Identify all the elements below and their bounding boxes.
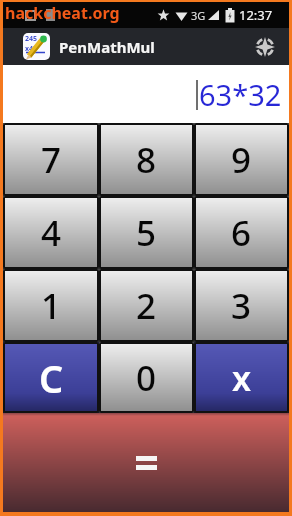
button[interactable]: 6 <box>194 196 289 269</box>
staticText: PenMathMul <box>59 37 155 57</box>
button[interactable]: 9 <box>194 123 289 196</box>
button[interactable]: 8 <box>99 123 194 196</box>
staticText: C <box>39 352 64 404</box>
staticText: 9 <box>231 136 252 184</box>
staticText: 0 <box>136 354 157 402</box>
button[interactable]: 1 <box>3 269 99 342</box>
staticText: 2 <box>136 282 157 330</box>
button[interactable]: 5 <box>99 196 194 269</box>
staticText: hackcheat.org <box>5 2 120 24</box>
staticText: x49 <box>25 44 38 54</box>
staticText: 245 <box>25 34 38 44</box>
button[interactable] <box>3 413 289 512</box>
staticText: 1 <box>41 282 62 330</box>
button[interactable]: 2 <box>99 269 194 342</box>
button[interactable]: 7 <box>3 123 99 196</box>
staticText: 5 <box>136 209 157 257</box>
staticText: 3 <box>231 282 252 330</box>
button[interactable] <box>250 28 280 65</box>
staticText: 7 <box>41 136 62 184</box>
staticText: x <box>232 355 252 401</box>
staticText: 6 <box>231 209 252 257</box>
button[interactable]: 3 <box>194 269 289 342</box>
button[interactable]: x <box>194 342 289 413</box>
button[interactable]: 0 <box>99 342 194 413</box>
staticText: 3G <box>191 8 206 23</box>
button[interactable]: 4 <box>3 196 99 269</box>
staticText: 8 <box>136 136 157 184</box>
button[interactable]: C <box>3 342 99 413</box>
staticText: 4 <box>41 209 62 257</box>
staticText: 12:37 <box>239 6 273 24</box>
staticText: 63*32 <box>199 75 282 114</box>
